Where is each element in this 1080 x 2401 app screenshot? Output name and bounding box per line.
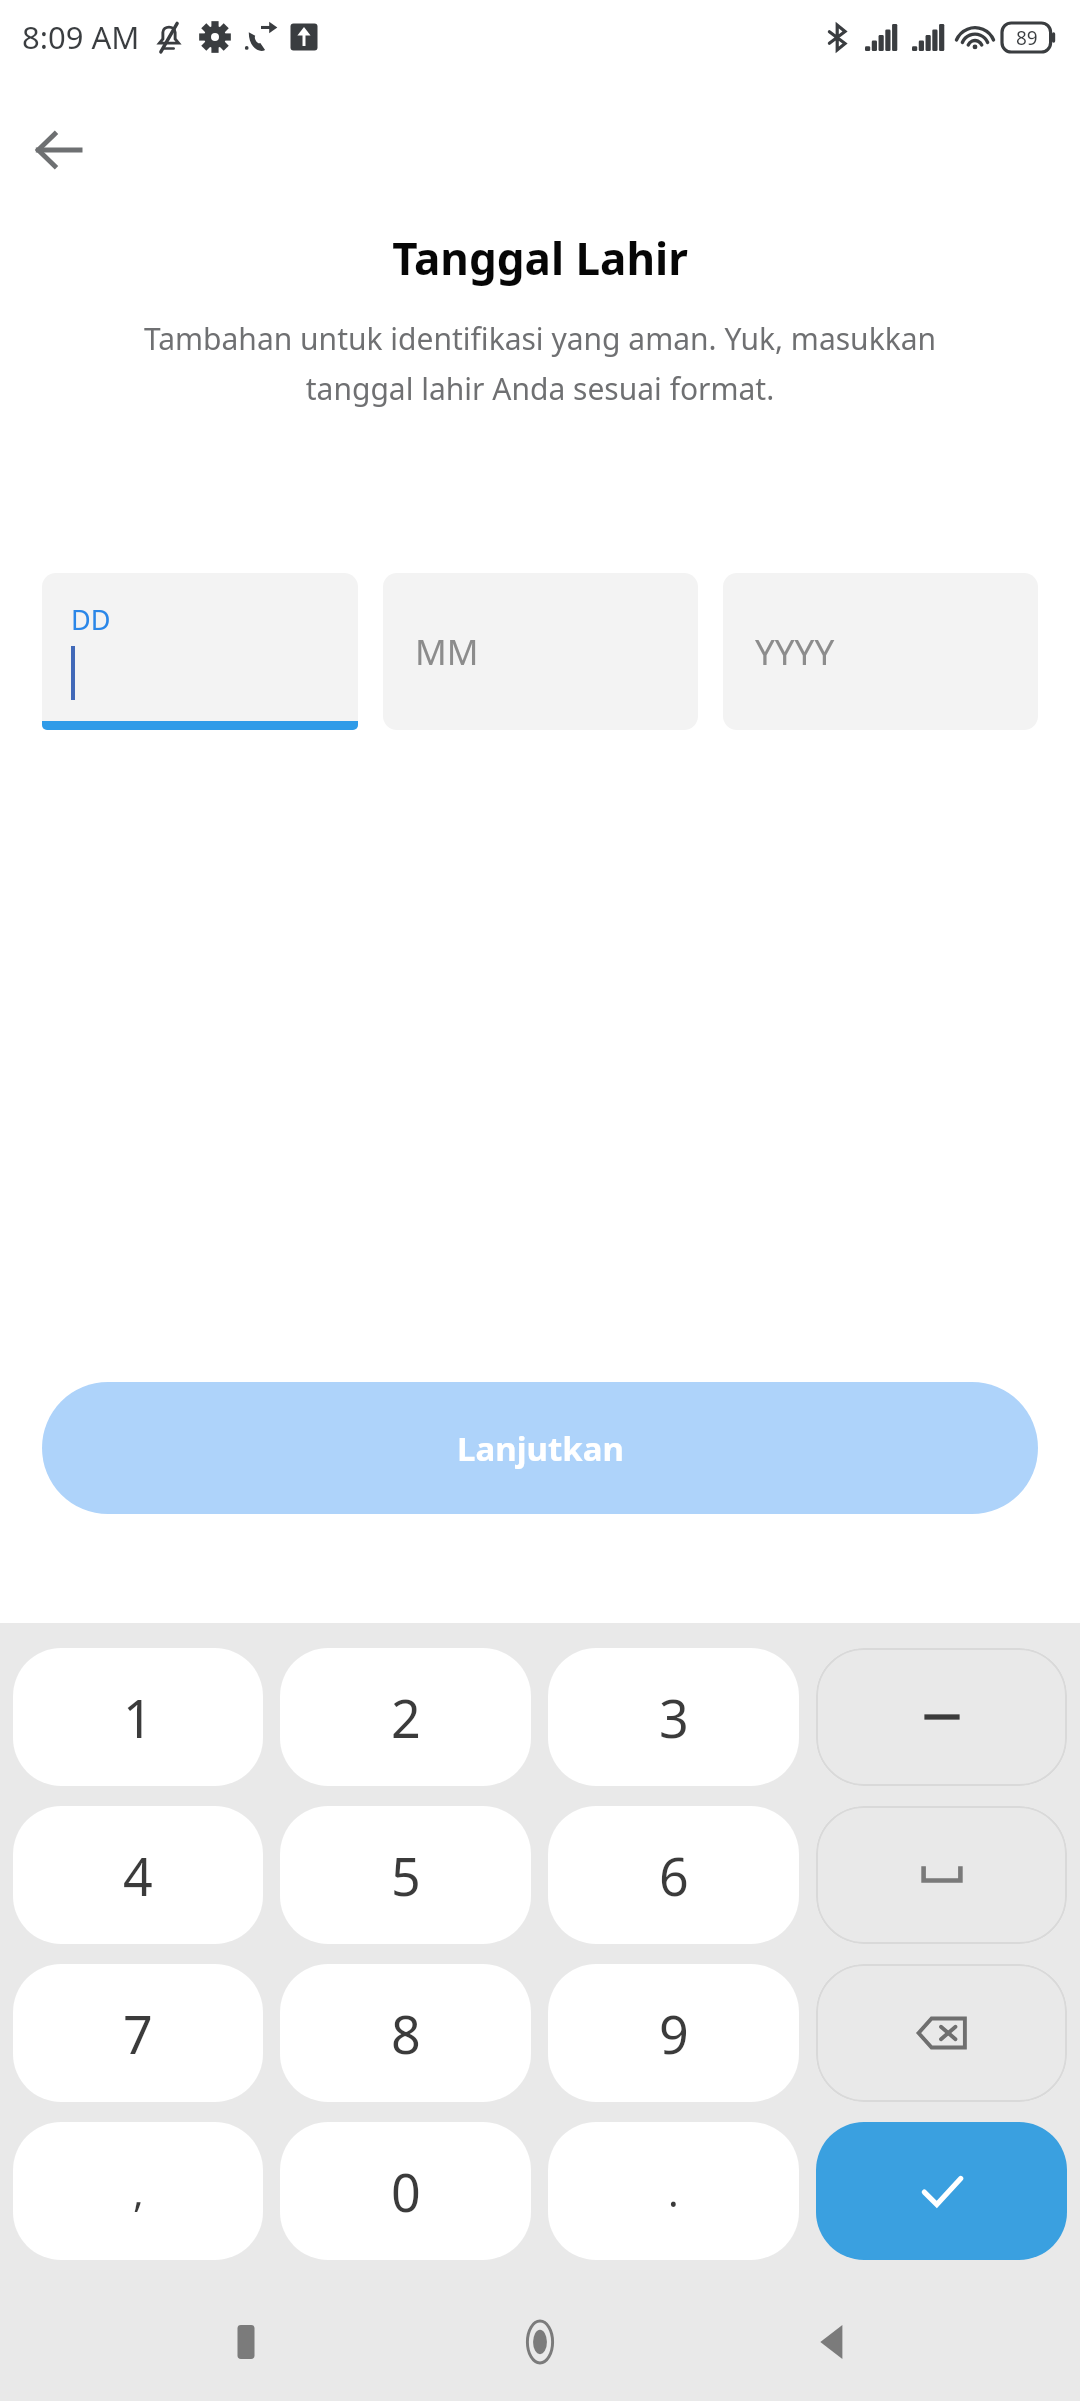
button[interactable]: Minus [816, 1648, 1067, 1786]
button[interactable]: YYYY [723, 573, 1038, 730]
button[interactable]: 9 [548, 1964, 799, 2102]
button[interactable]: Backspace [816, 1964, 1067, 2102]
staticText: 5 [391, 1840, 421, 1911]
button[interactable]: Enter [816, 2122, 1067, 2260]
staticText: 1 [123, 1682, 153, 1753]
staticText: Lanjutkan [457, 1426, 624, 1471]
staticText: 8 [391, 1998, 421, 2069]
button[interactable]: Back [24, 116, 92, 184]
staticText: 89 [1016, 25, 1038, 51]
staticText: 3 [659, 1682, 689, 1753]
staticText: MM [415, 628, 479, 676]
staticText: 4 [123, 1840, 153, 1911]
button[interactable]: DD [42, 573, 358, 730]
button[interactable]: Home [492, 2294, 588, 2390]
button[interactable]: MM [383, 573, 698, 730]
staticText: 2 [391, 1682, 421, 1753]
button[interactable]: . [548, 2122, 799, 2260]
button[interactable]: Lanjutkan [42, 1382, 1038, 1514]
button[interactable]: 4 [13, 1806, 263, 1944]
staticText: DD [71, 601, 111, 638]
button[interactable]: 0 [280, 2122, 531, 2260]
staticText: Tanggal Lahir [392, 228, 688, 288]
button[interactable]: 2 [280, 1648, 531, 1786]
staticText: YYYY [755, 628, 835, 676]
staticText: 8:09 AM [22, 16, 140, 58]
button[interactable]: Space [816, 1806, 1067, 1944]
staticText: 9 [659, 1998, 689, 2069]
staticText: Tambahan untuk identifikasi yang aman. Y… [96, 318, 984, 409]
button[interactable]: Recents [198, 2294, 294, 2390]
staticText: 0 [391, 2156, 421, 2227]
button[interactable]: 8 [280, 1964, 531, 2102]
staticText: , [133, 2164, 144, 2218]
staticText: 7 [123, 1998, 153, 2069]
button[interactable]: 7 [13, 1964, 263, 2102]
staticText: . [668, 2164, 679, 2218]
button[interactable]: Back [786, 2294, 882, 2390]
button[interactable]: 3 [548, 1648, 799, 1786]
staticText: 6 [659, 1840, 689, 1911]
button[interactable]: 6 [548, 1806, 799, 1944]
button[interactable]: 5 [280, 1806, 531, 1944]
button[interactable]: 1 [13, 1648, 263, 1786]
button[interactable]: , [13, 2122, 263, 2260]
